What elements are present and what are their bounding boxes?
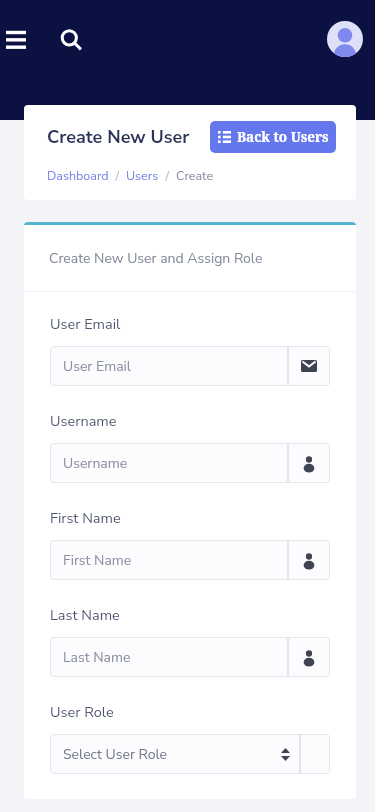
button[interactable]: Menu [0, 19, 31, 59]
staticText: Username [63, 454, 128, 473]
staticText: User Email [63, 357, 131, 376]
button[interactable]: Last Name [50, 637, 288, 677]
staticText: / [159, 167, 176, 184]
staticText: User Role [50, 702, 114, 722]
button[interactable]: Back to Users [210, 121, 336, 153]
staticText: Select User Role [63, 745, 168, 764]
staticText: Create [176, 167, 214, 184]
staticText: Create New User and Assign Role [49, 249, 263, 268]
staticText: Last Name [50, 605, 120, 625]
button[interactable]: Account [327, 21, 363, 57]
staticText: User Email [50, 314, 121, 334]
button[interactable]: First Name [50, 540, 288, 580]
staticText: Back to Users [237, 128, 329, 146]
button[interactable]: Search [54, 21, 89, 61]
staticText: Username [50, 411, 117, 431]
staticText: First Name [63, 551, 132, 570]
button[interactable]: User Email [50, 346, 288, 386]
button[interactable]: Username [50, 443, 288, 483]
button[interactable]: Select User Role [50, 734, 300, 774]
staticText: / [109, 167, 126, 184]
staticText: Last Name [63, 648, 131, 667]
staticText: First Name [50, 508, 121, 528]
button[interactable]: Dashboard [47, 167, 109, 184]
button[interactable]: Users [126, 167, 159, 184]
staticText: Create New User [47, 125, 190, 150]
